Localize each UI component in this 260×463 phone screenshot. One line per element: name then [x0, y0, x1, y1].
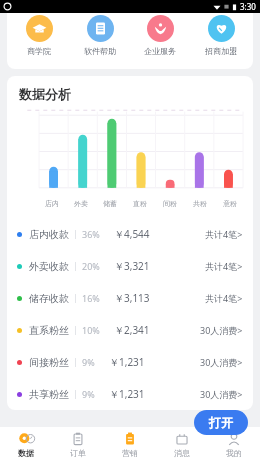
staticText: 直系粉丝 — [29, 324, 69, 337]
staticText: 企业服务 — [144, 46, 176, 56]
staticText: 36% — [82, 228, 100, 240]
staticText: ￥1,231 — [109, 355, 145, 369]
staticText: ￥3,321 — [114, 259, 150, 273]
staticText: 商学院 — [27, 46, 51, 56]
staticText: 间接粉丝 — [29, 356, 69, 369]
staticText: 储存收款 — [29, 292, 69, 305]
staticText: 软件帮助 — [84, 46, 116, 56]
staticText: 9% — [82, 388, 95, 400]
button[interactable]: 店内收款 — [7, 218, 253, 250]
button[interactable]: 营销 — [104, 427, 156, 463]
button[interactable]: 软件帮助 — [72, 13, 128, 56]
staticText: 共享粉丝 — [29, 388, 69, 401]
button[interactable]: 打开 — [194, 410, 248, 435]
staticText: 3:30 — [240, 1, 256, 12]
staticText: 外卖收款 — [29, 260, 69, 273]
button[interactable]: 订单 — [52, 427, 104, 463]
button[interactable]: 共享粉丝 — [7, 378, 253, 410]
staticText: 30人消费> — [200, 356, 243, 368]
button[interactable]: 储存收款 — [7, 282, 253, 314]
staticText: 间粉 — [163, 199, 177, 208]
button[interactable]: 数据 — [0, 427, 52, 463]
button[interactable]: 外卖收款 — [7, 250, 253, 282]
button[interactable]: 企业服务 — [132, 13, 188, 56]
staticText: 店内收款 — [29, 228, 69, 241]
staticText: 共计4笔> — [205, 228, 243, 240]
staticText: 打开 — [209, 415, 233, 430]
staticText: ￥2,341 — [114, 323, 150, 337]
staticText: 20% — [82, 260, 100, 272]
staticText: 店内 — [45, 199, 59, 208]
staticText: 30人消费> — [200, 324, 243, 336]
staticText: 16% — [82, 292, 100, 304]
staticText: 共计4笔> — [205, 292, 243, 304]
staticText: 外卖 — [74, 199, 88, 208]
staticText: ￥3,113 — [114, 291, 150, 305]
staticText: 我的 — [226, 448, 242, 458]
staticText: 储蓄 — [103, 199, 117, 208]
staticText: 消息 — [174, 448, 190, 458]
staticText: ￥1,231 — [109, 387, 145, 401]
staticText: 数据分析 — [19, 86, 71, 102]
staticText: 招商加盟 — [205, 46, 237, 56]
staticText: ￥4,544 — [114, 227, 150, 241]
staticText: 数据 — [18, 448, 34, 458]
button[interactable]: 直系粉丝 — [7, 314, 253, 346]
staticText: 9% — [82, 356, 95, 368]
button[interactable]: 间接粉丝 — [7, 346, 253, 378]
staticText: 共粉 — [193, 199, 207, 208]
staticText: 10% — [82, 324, 100, 336]
staticText: 营销 — [122, 448, 138, 458]
staticText: 意粉 — [223, 199, 237, 208]
button[interactable]: 我的 — [208, 427, 260, 463]
staticText: 30人消费> — [200, 388, 243, 400]
staticText: 共计4笔> — [205, 260, 243, 272]
staticText: 直粉 — [133, 199, 147, 208]
staticText: 订单 — [70, 448, 86, 458]
button[interactable]: 消息 — [156, 427, 208, 463]
button[interactable]: 招商加盟 — [193, 13, 249, 56]
button[interactable]: 商学院 — [11, 13, 67, 56]
